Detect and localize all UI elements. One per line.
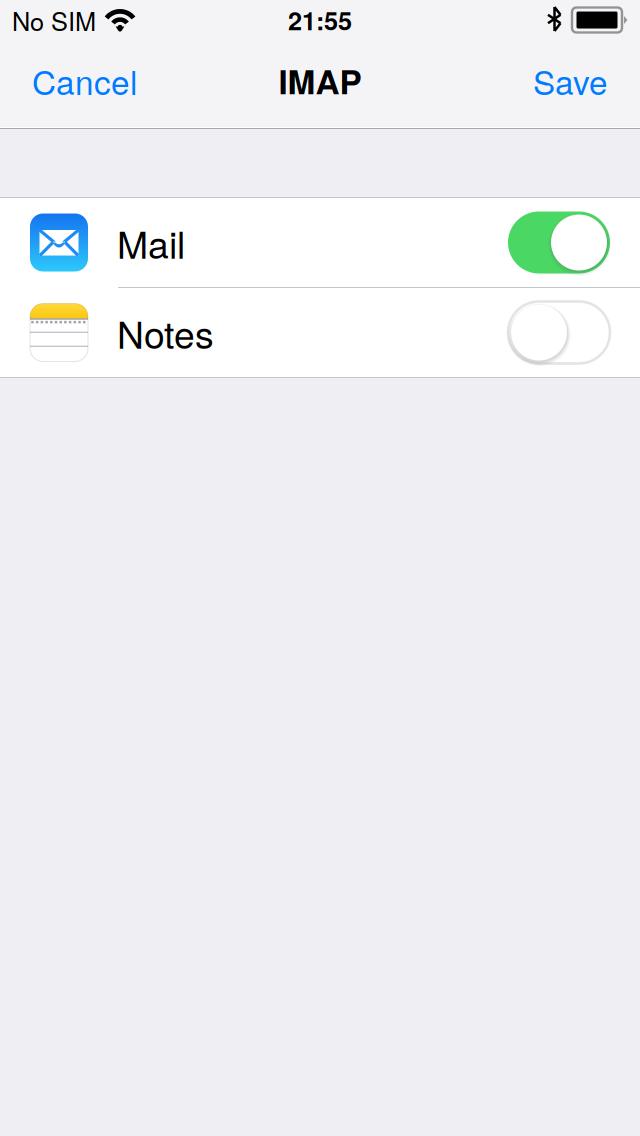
staticText: No SIM bbox=[12, 2, 96, 38]
staticText: Mail bbox=[117, 216, 185, 269]
button[interactable]: Save bbox=[511, 40, 640, 121]
staticText: 21:55 bbox=[288, 2, 352, 38]
staticText: Notes bbox=[117, 306, 214, 359]
button[interactable]: Cancel bbox=[0, 40, 159, 121]
button[interactable]: Notes on this account bbox=[508, 301, 610, 363]
staticText: Save bbox=[533, 57, 608, 104]
button[interactable]: Mail on this account bbox=[508, 211, 610, 273]
staticText: IMAP bbox=[278, 57, 361, 104]
staticText: Cancel bbox=[32, 57, 137, 104]
